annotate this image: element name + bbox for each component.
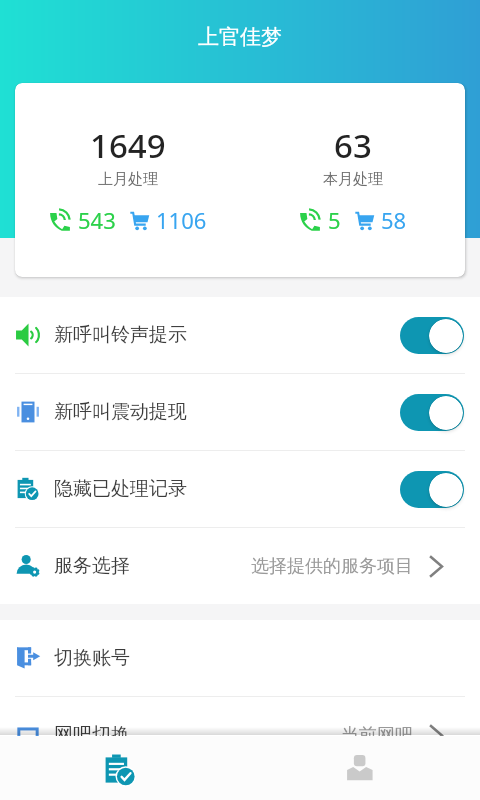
staticText: 切换账号 [54,646,130,670]
button[interactable] [400,471,464,508]
staticText: 1106 [156,205,207,235]
staticText: 新呼叫震动提现 [54,400,187,424]
staticText: 选择提供的服务项目 [251,555,413,578]
staticText: 上月处理 [98,170,158,189]
staticText: 543 [78,205,116,235]
button[interactable]: 服务选择 [0,528,480,604]
staticText: 本月处理 [323,170,383,189]
button[interactable]: 新呼叫铃声提示 [0,297,480,373]
button[interactable]: 我的 [240,736,480,800]
button[interactable]: 订单 [0,736,240,800]
button[interactable] [400,317,464,354]
staticText: 隐藏已处理记录 [54,477,187,501]
staticText: 新呼叫铃声提示 [54,323,187,347]
button[interactable]: 切换账号 [0,620,480,696]
button[interactable]: 新呼叫震动提现 [0,374,480,450]
button[interactable]: 网吧切换 [0,697,480,773]
staticText: 58 [381,205,407,235]
staticText: 当前网吧 [341,724,413,747]
staticText: 服务选择 [54,554,130,578]
button[interactable]: 隐藏已处理记录 [0,451,480,527]
staticText: 63 [334,123,372,168]
staticText: 5 [328,205,341,235]
staticText: 上官佳梦 [198,24,282,50]
staticText: 网吧切换 [54,723,130,747]
staticText: 1649 [90,123,166,168]
button[interactable] [400,394,464,431]
